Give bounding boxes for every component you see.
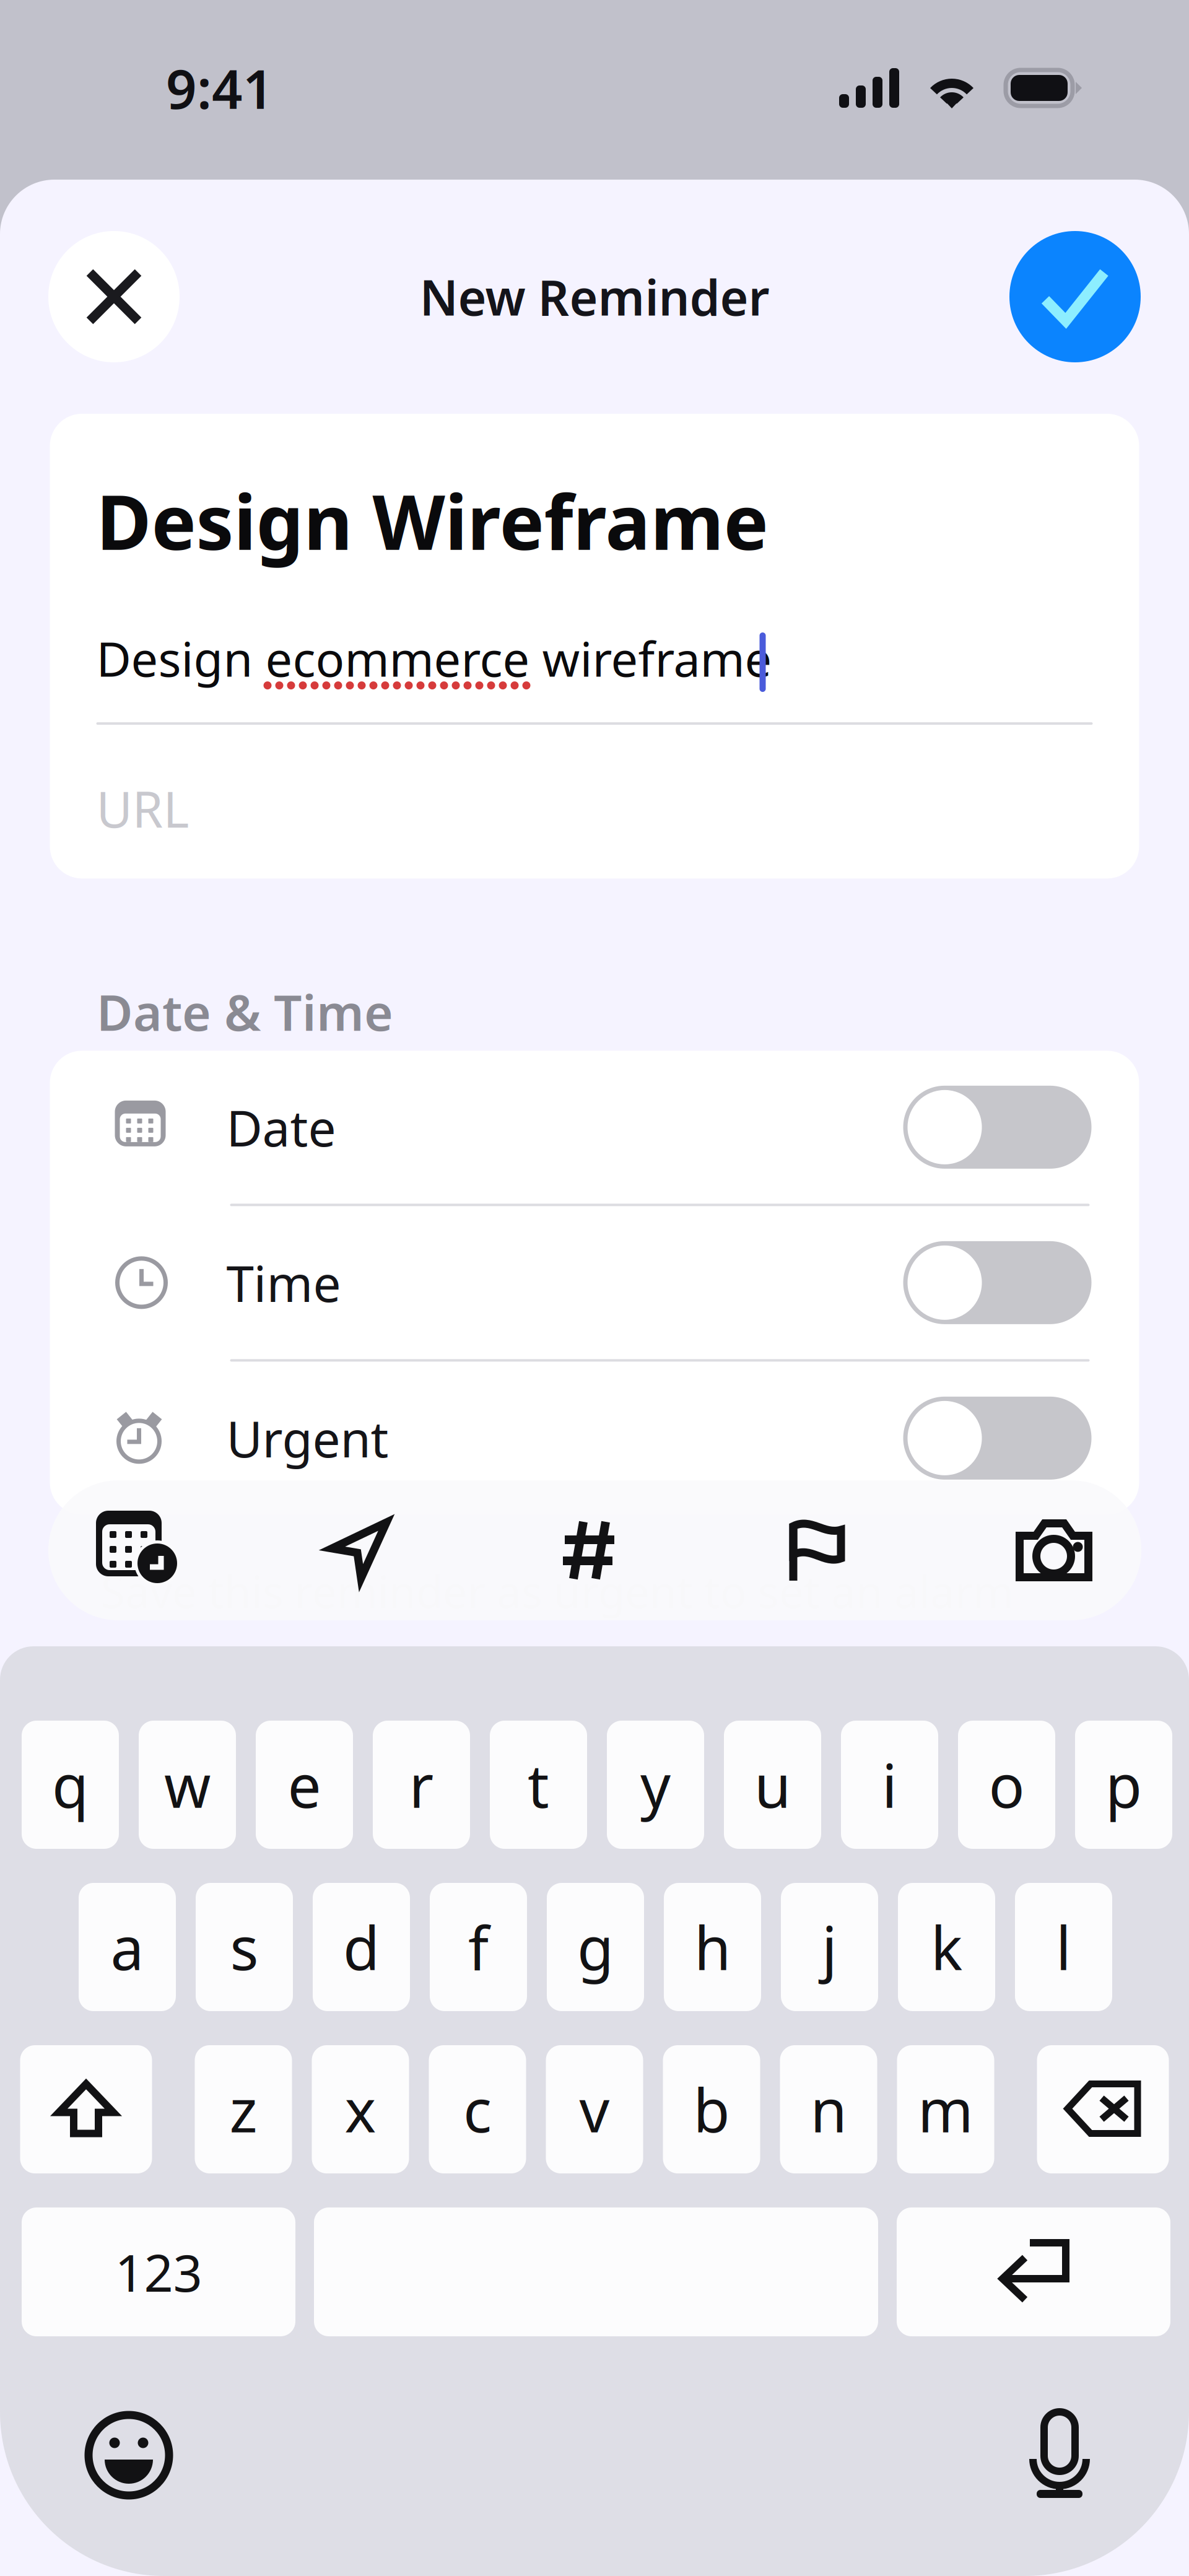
- button[interactable]: y: [607, 1721, 704, 1849]
- staticText: d: [343, 1908, 380, 1987]
- button[interactable]: p: [1075, 1721, 1172, 1849]
- staticText: f: [468, 1908, 489, 1987]
- button[interactable]: w: [139, 1721, 236, 1849]
- staticText: b: [693, 2070, 730, 2149]
- staticText: h: [694, 1908, 731, 1987]
- staticText: q: [52, 1745, 89, 1824]
- button[interactable]: Delete: [1037, 2045, 1169, 2173]
- staticText: u: [754, 1745, 791, 1824]
- button[interactable]: Location: [272, 1480, 446, 1620]
- button[interactable]: i: [841, 1721, 938, 1849]
- staticText: y: [640, 1745, 671, 1824]
- staticText: Save this reminder as urgent to set an a…: [101, 1562, 1014, 1620]
- button[interactable]: Shift: [20, 2045, 152, 2173]
- staticText: x: [345, 2070, 376, 2149]
- button[interactable]: n: [780, 2045, 877, 2173]
- staticText: g: [577, 1908, 614, 1987]
- staticText: 123: [115, 2238, 202, 2306]
- button[interactable]: Close: [48, 231, 180, 362]
- staticText: o: [989, 1745, 1025, 1824]
- button[interactable]: u: [724, 1721, 821, 1849]
- staticText: a: [111, 1908, 144, 1987]
- staticText: Date & Time: [97, 979, 393, 1044]
- staticText: Design Wireframe: [96, 471, 768, 571]
- button[interactable]: Date and time: [48, 1480, 223, 1620]
- staticText: Time: [226, 1250, 341, 1316]
- button[interactable]: h: [664, 1883, 761, 2011]
- button[interactable]: o: [958, 1721, 1055, 1849]
- button[interactable]: z: [195, 2045, 292, 2173]
- staticText: n: [810, 2070, 847, 2149]
- button[interactable]: x: [312, 2045, 409, 2173]
- button[interactable]: t: [490, 1721, 587, 1849]
- button[interactable]: Dictate: [1030, 2412, 1089, 2499]
- staticText: p: [1105, 1745, 1142, 1824]
- staticText: Urgent: [226, 1405, 389, 1471]
- button[interactable]: s: [196, 1883, 293, 2011]
- button[interactable]: Tag: [502, 1480, 677, 1620]
- staticText: k: [931, 1908, 962, 1987]
- staticText: w: [164, 1745, 211, 1824]
- staticText: 9:41: [166, 52, 274, 124]
- button[interactable]: c: [429, 2045, 526, 2173]
- staticText: z: [229, 2070, 257, 2149]
- staticText: j: [822, 1908, 837, 1987]
- button[interactable]: k: [898, 1883, 995, 2011]
- button[interactable]: Urgent: [50, 1362, 1139, 1515]
- staticText: c: [463, 2070, 492, 2149]
- staticText: i: [882, 1745, 897, 1824]
- button[interactable]: Flag: [730, 1480, 905, 1620]
- staticText: r: [409, 1745, 434, 1824]
- staticText: New Reminder: [420, 264, 769, 329]
- staticText: e: [288, 1745, 321, 1824]
- button[interactable]: j: [781, 1883, 878, 2011]
- button[interactable]: m: [897, 2045, 994, 2173]
- button[interactable]: e: [256, 1721, 353, 1849]
- button[interactable]: Camera: [967, 1480, 1141, 1620]
- button[interactable]: l: [1015, 1883, 1112, 2011]
- staticText: v: [579, 2070, 610, 2149]
- staticText: URL: [96, 776, 189, 841]
- staticText: Design ecommerce wireframe: [96, 626, 772, 690]
- button[interactable]: v: [546, 2045, 643, 2173]
- button[interactable]: Emoji: [88, 2412, 170, 2499]
- button[interactable]: Return: [897, 2207, 1170, 2336]
- staticText: t: [528, 1745, 549, 1824]
- button[interactable]: g: [547, 1883, 644, 2011]
- button[interactable]: f: [430, 1883, 527, 2011]
- button[interactable]: Date: [50, 1051, 1139, 1206]
- button[interactable]: d: [313, 1883, 410, 2011]
- button[interactable]: r: [373, 1721, 470, 1849]
- staticText: Date: [226, 1094, 336, 1160]
- button[interactable]: a: [79, 1883, 176, 2011]
- button[interactable]: q: [22, 1721, 119, 1849]
- button[interactable]: Time: [50, 1206, 1139, 1362]
- button[interactable]: Save: [1009, 231, 1141, 362]
- button[interactable]: 123: [22, 2207, 295, 2336]
- staticText: m: [918, 2070, 973, 2149]
- staticText: l: [1056, 1908, 1071, 1987]
- staticText: s: [230, 1908, 259, 1987]
- button[interactable]: b: [663, 2045, 760, 2173]
